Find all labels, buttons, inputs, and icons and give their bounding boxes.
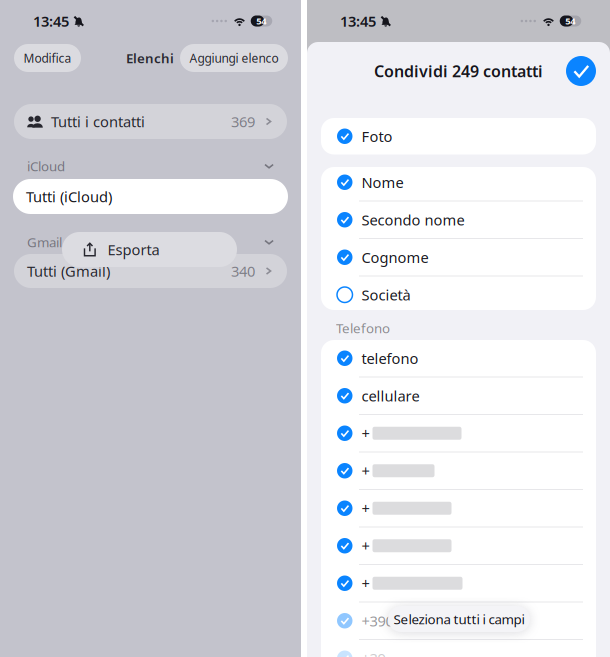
staticText: Telefono	[336, 319, 390, 337]
button[interactable]: +	[321, 527, 596, 564]
staticText: Esporta	[108, 240, 160, 259]
button[interactable]: Aggiungi elenco	[180, 44, 288, 72]
staticText: Tutti i contatti	[51, 112, 145, 131]
staticText: 13:45	[340, 11, 376, 31]
staticText: 340	[231, 261, 255, 281]
staticText: Società	[361, 285, 410, 304]
button[interactable]: +	[321, 565, 596, 601]
staticText: Aggiungi elenco	[189, 50, 278, 66]
staticText: +39	[361, 648, 385, 657]
button[interactable]: Tutti (Gmail)	[14, 254, 287, 288]
button[interactable]: Fine	[566, 56, 596, 86]
staticText: +	[361, 461, 369, 480]
button[interactable]: +39	[321, 640, 596, 657]
staticText: +	[361, 536, 369, 555]
staticText: Condividi 249 contatti	[374, 60, 543, 82]
button[interactable]: Tutti (iCloud)	[13, 179, 288, 214]
staticText: Tutti (Gmail)	[27, 261, 110, 281]
staticText: 369	[231, 112, 255, 131]
button[interactable]: Esporta	[62, 232, 237, 267]
button[interactable]: cellulare	[321, 377, 596, 414]
button[interactable]: Nome	[321, 164, 596, 200]
staticText: Nome	[361, 172, 403, 192]
staticText: 54	[565, 15, 575, 27]
staticText: 13:45	[33, 11, 69, 31]
staticText: telefono	[361, 348, 418, 368]
button[interactable]: Cognome	[321, 239, 596, 275]
staticText: Gmail	[27, 233, 62, 251]
button[interactable]: Modifica	[14, 44, 81, 72]
staticText: +390	[361, 611, 393, 630]
staticText: 54	[256, 15, 266, 27]
staticText: iCloud	[27, 157, 65, 175]
button[interactable]: Società	[321, 276, 596, 313]
staticText: +	[361, 498, 369, 518]
staticText: Foto	[361, 126, 392, 146]
button[interactable]: Secondo nome	[321, 201, 596, 238]
staticText: Seleziona tutti i campi	[393, 610, 524, 628]
staticText: Secondo nome	[361, 210, 464, 229]
button[interactable]: telefono	[321, 340, 596, 376]
staticText: Modifica	[23, 50, 71, 66]
staticText: +	[361, 573, 369, 593]
button[interactable]: Foto	[321, 118, 596, 154]
button[interactable]: +	[321, 415, 596, 451]
button[interactable]: +390	[321, 602, 596, 639]
button[interactable]: +	[321, 452, 596, 489]
button[interactable]: Tutti i contatti	[14, 104, 287, 139]
staticText: +	[361, 423, 369, 443]
staticText: Cognome	[361, 247, 428, 267]
button[interactable]: +	[321, 490, 596, 526]
staticText: Tutti (iCloud)	[26, 187, 112, 206]
staticText: Elenchi	[126, 49, 174, 67]
staticText: cellulare	[361, 386, 419, 405]
